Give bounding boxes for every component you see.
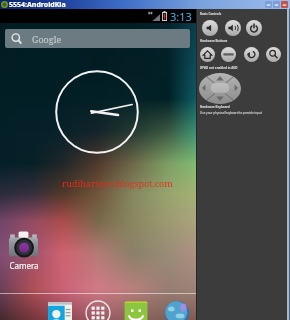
staticText: Use your physical keyboard to provide in… [200,111,262,115]
staticText: 5554:AndroidKia [9,0,66,9]
button[interactable]: Clock [55,70,139,154]
staticText: Camera [9,260,39,271]
button[interactable]: Messaging [123,300,149,320]
staticText: Hardware Buttons [200,39,228,43]
staticText: Google [32,33,62,45]
button[interactable]: Home [200,47,215,62]
button[interactable]: Back [244,47,259,62]
button[interactable]: People [47,300,73,320]
button[interactable]: Menu [221,47,236,62]
button[interactable]: DPAD [199,73,241,104]
button[interactable]: Window button [265,1,272,8]
button[interactable]: All apps [85,300,111,320]
button[interactable]: Volume down [202,20,218,36]
button[interactable]: Camera [3,231,44,271]
button[interactable]: Browser [164,300,190,320]
staticText: Basic Controls [200,12,222,16]
button[interactable]: Window button [273,1,280,8]
button[interactable]: Volume up [225,20,241,36]
staticText: DPAD not enabled in AVD [200,66,238,70]
button[interactable]: Google [5,29,190,48]
staticText: rudihartoyo.blogspot.com [62,177,173,189]
button[interactable]: Power [246,20,262,36]
button[interactable]: Search [266,47,281,62]
staticText: 3:13 [170,9,192,23]
button[interactable]: Window button [281,1,288,8]
staticText: Hardware Keyboard [200,105,230,109]
